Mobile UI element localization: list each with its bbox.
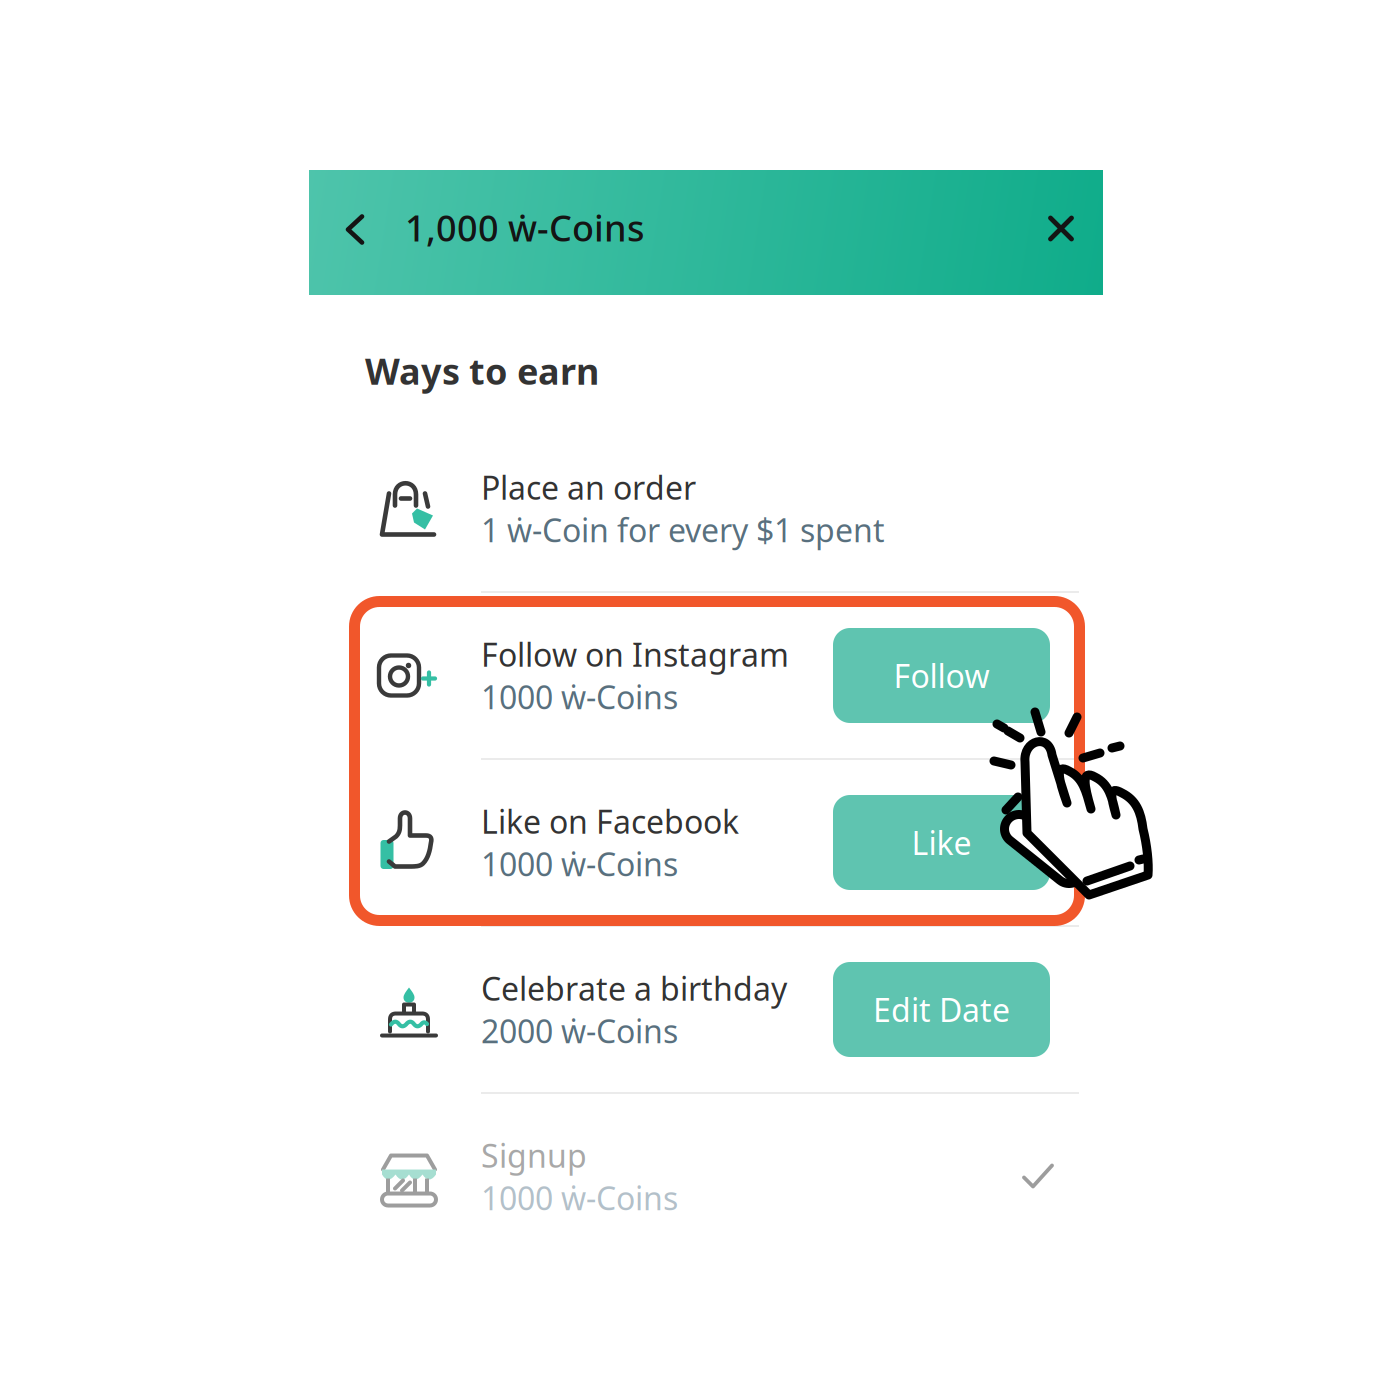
staticText: Follow — [893, 654, 989, 697]
staticText: 1,000 ẇ-Coins — [405, 204, 644, 251]
staticText: 1000 ẇ-Coins — [481, 675, 678, 718]
staticText: Edit Date — [873, 988, 1010, 1031]
staticText: Follow on Instagram — [481, 633, 789, 675]
staticText: Like on Facebook — [481, 800, 739, 842]
button[interactable]: Follow — [833, 628, 1050, 723]
button[interactable]: Close — [1033, 166, 1089, 291]
staticText: 1000 ẇ-Coins — [481, 842, 678, 885]
staticText: 1000 ẇ-Coins — [481, 1176, 678, 1219]
button[interactable]: Like — [833, 795, 1050, 890]
button[interactable]: Back — [327, 167, 383, 292]
button[interactable]: Edit Date — [833, 962, 1050, 1057]
staticText: Signup — [481, 1134, 587, 1176]
staticText: Like — [911, 821, 971, 864]
staticText: Ways to earn — [365, 347, 599, 395]
staticText: Celebrate a birthday — [481, 967, 787, 1009]
staticText: 2000 ẇ-Coins — [481, 1009, 678, 1052]
staticText: 1 ẇ-Coin for every $1 spent — [481, 508, 885, 551]
staticText: Place an order — [481, 466, 696, 508]
